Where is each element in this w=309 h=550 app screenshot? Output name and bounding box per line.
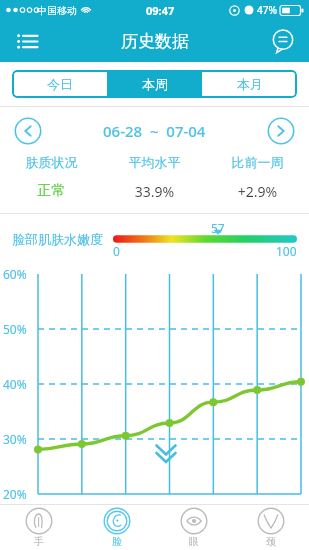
button[interactable]: 今日 — [12, 70, 107, 98]
staticText: 正常 — [0, 182, 103, 200]
staticText: 历史数据 — [121, 31, 189, 52]
staticText: 60% — [3, 266, 27, 282]
staticText: 50% — [3, 321, 27, 337]
staticText: 47% — [257, 3, 277, 17]
staticText: 33.9% — [103, 182, 206, 201]
staticText: 今日 — [47, 76, 73, 92]
staticText: 30% — [3, 431, 27, 447]
staticText: 脸 — [112, 535, 122, 548]
button[interactable]: 脸 — [78, 505, 155, 550]
staticText: 眼 — [189, 535, 199, 548]
staticText: 20% — [3, 486, 27, 502]
button[interactable]: Menu — [8, 22, 46, 60]
button[interactable]: 手 — [0, 505, 78, 550]
button[interactable]: 眼 — [155, 505, 232, 550]
staticText: 100 — [276, 243, 297, 259]
staticText: 本周 — [142, 76, 168, 92]
staticText: 颈 — [266, 535, 276, 548]
button[interactable]: Next period — [267, 117, 295, 145]
staticText: 57 — [211, 220, 225, 236]
staticText: 中国移动 — [37, 4, 77, 17]
staticText: 0 — [113, 243, 120, 259]
staticText: 本月 — [237, 76, 263, 92]
staticText: 肤质状况 — [0, 154, 103, 170]
staticText: 手 — [34, 535, 44, 548]
button[interactable]: 本月 — [202, 70, 297, 98]
staticText: 比前一周 — [206, 154, 309, 170]
button[interactable]: 颈 — [232, 505, 309, 550]
button[interactable]: 本周 — [107, 70, 202, 98]
button[interactable]: Messages — [265, 23, 301, 59]
staticText: 脸部肌肤水嫩度 — [12, 231, 103, 247]
button[interactable]: Previous period — [14, 117, 42, 145]
staticText: 40% — [3, 376, 27, 392]
staticText: +2.9% — [206, 182, 309, 201]
staticText: 平均水平 — [103, 154, 206, 170]
staticText: 09:47 — [146, 3, 175, 18]
staticText: 06-28 ~ 07-04 — [103, 121, 206, 141]
